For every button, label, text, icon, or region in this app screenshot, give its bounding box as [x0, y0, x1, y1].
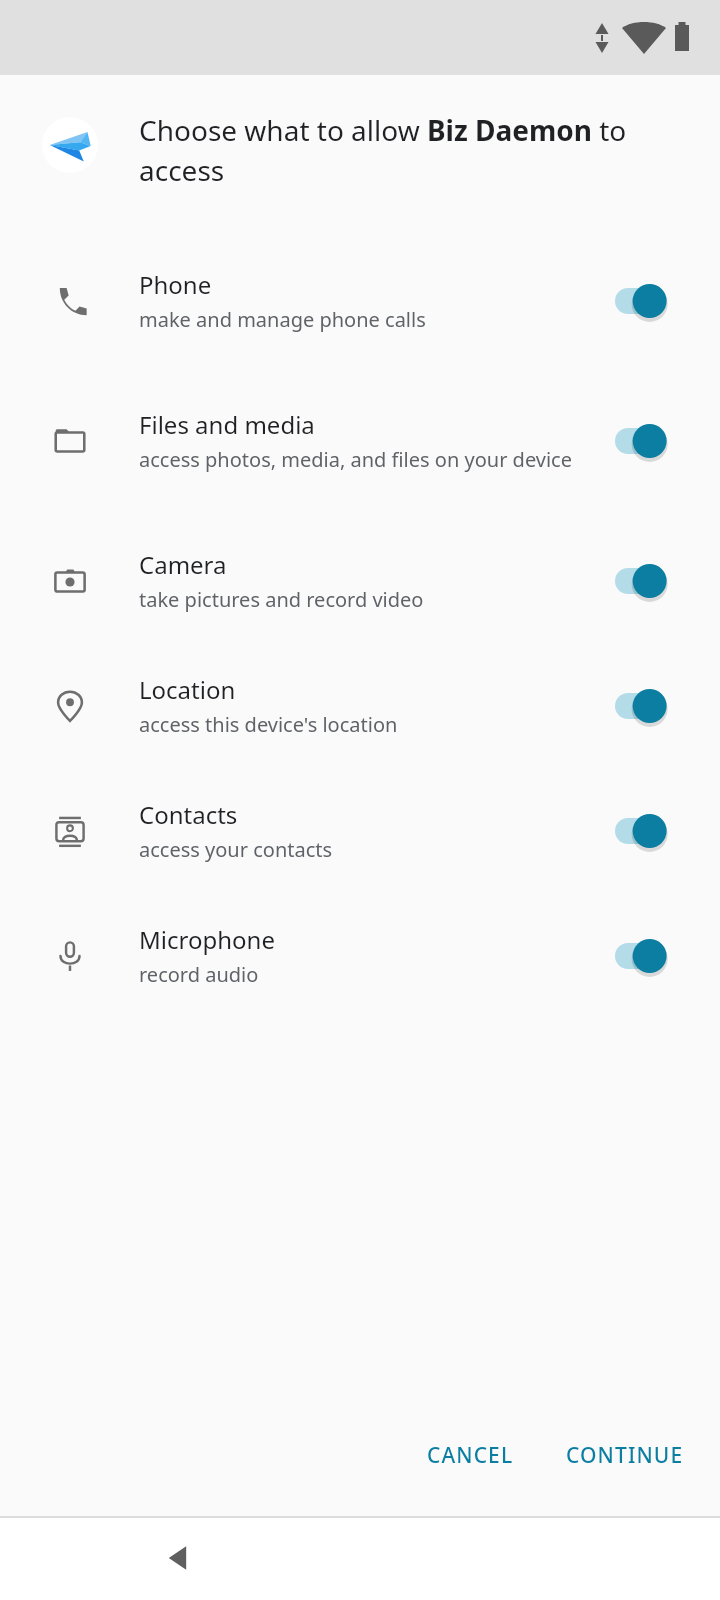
button[interactable]: Camera	[0, 518, 720, 643]
button[interactable]: CONTINUE	[550, 1431, 700, 1480]
staticText: Location	[139, 673, 236, 706]
staticText: access this device's location	[139, 711, 398, 738]
button[interactable]: Toggle permission	[615, 811, 677, 851]
staticText: Camera	[139, 548, 227, 581]
button[interactable]: Contacts	[0, 768, 720, 893]
button[interactable]: Toggle permission	[615, 936, 677, 976]
staticText: access photos, media, and files on your …	[139, 446, 572, 473]
staticText: Contacts	[139, 798, 238, 831]
button[interactable]: Microphone	[0, 893, 720, 1018]
button[interactable]: Toggle permission	[615, 421, 677, 461]
staticText: make and manage phone calls	[139, 306, 426, 333]
button[interactable]: Toggle permission	[615, 686, 677, 726]
staticText: CONTINUE	[566, 1441, 684, 1470]
button[interactable]: Location	[0, 643, 720, 768]
staticText: record audio	[139, 961, 259, 988]
button[interactable]: CANCEL	[411, 1431, 530, 1480]
staticText: CANCEL	[427, 1441, 514, 1470]
staticText: Choose what to allow Biz Daemon to acces…	[139, 111, 686, 190]
button[interactable]: Files and media	[0, 363, 720, 518]
button[interactable]: Phone	[0, 238, 720, 363]
staticText: Phone	[139, 268, 212, 301]
button[interactable]: Toggle permission	[615, 281, 677, 321]
staticText: take pictures and record video	[139, 586, 424, 613]
button[interactable]: Back	[148, 1526, 212, 1590]
staticText: access your contacts	[139, 836, 333, 863]
button[interactable]: Toggle permission	[615, 561, 677, 601]
staticText: Microphone	[139, 923, 275, 956]
staticText: Files and media	[139, 408, 315, 441]
